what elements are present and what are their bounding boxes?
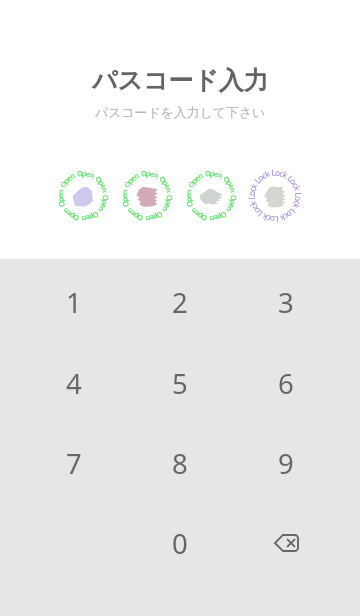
button[interactable]: 2 — [127, 262, 233, 343]
staticText: 8 — [172, 445, 188, 482]
button[interactable]: 9 — [233, 423, 339, 503]
button[interactable]: Locked item — [247, 168, 303, 224]
staticText: 2 — [172, 284, 188, 321]
button[interactable]: 3 — [233, 262, 339, 343]
staticText: 7 — [66, 445, 82, 482]
button[interactable]: Open item — [55, 168, 111, 224]
staticText: パスコード入力 — [92, 65, 269, 96]
button[interactable]: 4 — [21, 343, 127, 423]
staticText: 4 — [66, 365, 82, 402]
button[interactable]: 6 — [233, 343, 339, 423]
button[interactable]: 1 — [21, 262, 127, 343]
staticText: 0 — [172, 525, 188, 562]
button[interactable]: Open item — [119, 168, 175, 224]
staticText: 9 — [278, 445, 294, 482]
button[interactable]: Open item — [183, 168, 239, 224]
button[interactable]: 0 — [127, 503, 233, 583]
staticText: 5 — [172, 365, 188, 402]
staticText: 3 — [278, 284, 294, 321]
button[interactable]: 7 — [21, 423, 127, 503]
button[interactable]: 8 — [127, 423, 233, 503]
button[interactable]: 5 — [127, 343, 233, 423]
staticText: パスコードを入力して下さい — [95, 105, 266, 121]
button[interactable]: Delete — [233, 503, 339, 583]
staticText: 6 — [278, 365, 294, 402]
staticText: 1 — [66, 284, 82, 321]
